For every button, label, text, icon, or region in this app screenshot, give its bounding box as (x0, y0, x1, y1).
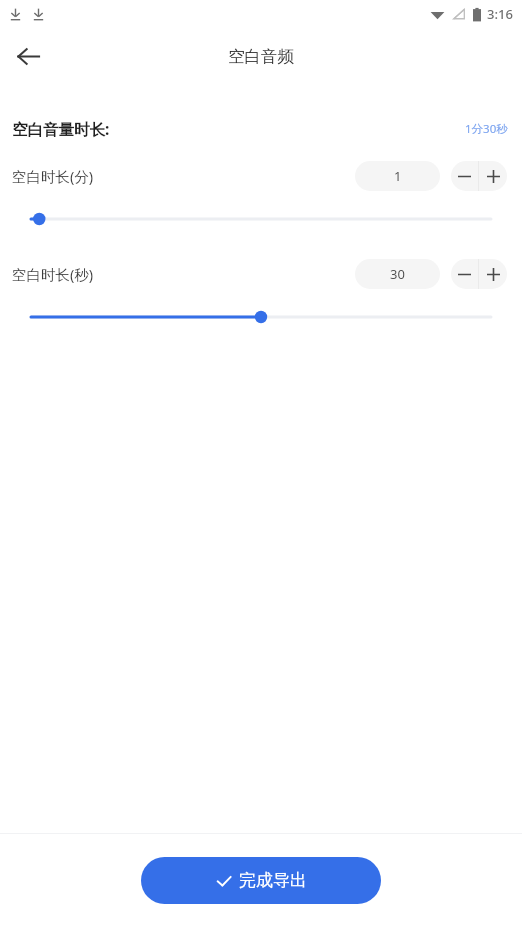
button[interactable]: 30 (355, 259, 440, 289)
button[interactable]: Back (4, 32, 52, 80)
button[interactable]: Increase (479, 259, 507, 289)
staticText: 30 (390, 265, 405, 283)
button[interactable]: 1 (355, 161, 440, 191)
staticText: 1分30秒 (465, 121, 508, 137)
button[interactable]: Slider (31, 206, 491, 232)
staticText: 空白时长(秒) (12, 264, 94, 284)
button[interactable]: Increase (479, 161, 507, 191)
staticText: 完成导出 (239, 870, 307, 891)
staticText: 空白时长(分) (12, 166, 94, 186)
staticText: 1 (394, 167, 402, 185)
button[interactable]: 完成导出 (141, 857, 381, 904)
staticText: 空白音量时长: (12, 118, 110, 139)
button[interactable]: Slider (31, 304, 491, 330)
staticText: 空白音频 (228, 46, 294, 67)
button[interactable]: Decrease (451, 161, 478, 191)
button[interactable]: Decrease (451, 259, 478, 289)
staticText: 3:16 (487, 5, 513, 23)
